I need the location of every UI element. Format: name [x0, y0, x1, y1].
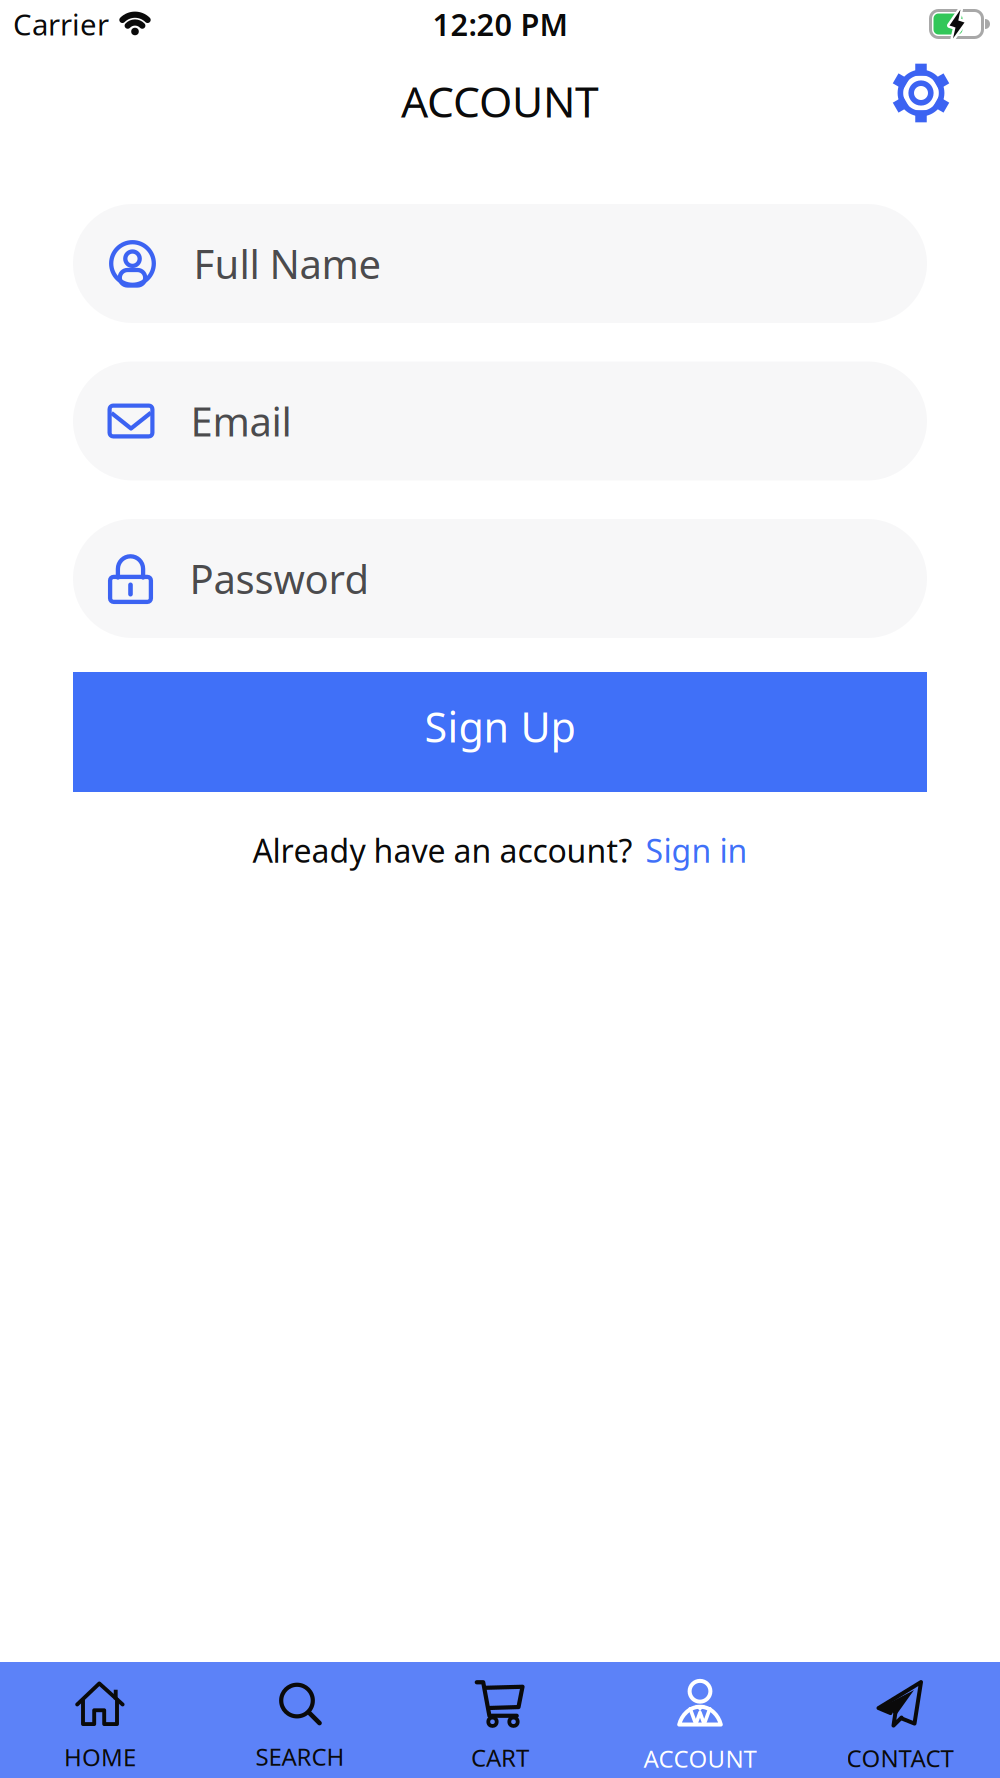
button[interactable]: CONTACT: [800, 1662, 1000, 1778]
button[interactable]: Sign Up: [73, 672, 927, 792]
staticText: CONTACT: [846, 1742, 953, 1774]
staticText: SEARCH: [255, 1741, 344, 1772]
staticText: ACCOUNT: [401, 73, 599, 129]
button[interactable]: Full Name: [73, 204, 927, 323]
button[interactable]: SEARCH: [200, 1662, 400, 1778]
staticText: CART: [471, 1742, 529, 1773]
button[interactable]: CART: [400, 1662, 600, 1778]
button[interactable]: ACCOUNT: [600, 1662, 800, 1778]
button[interactable]: Settings: [883, 55, 959, 131]
button[interactable]: HOME: [0, 1662, 200, 1778]
staticText: Full Name: [193, 237, 381, 290]
staticText: Already have an account?: [252, 829, 632, 871]
button[interactable]: Email: [73, 361, 927, 480]
staticText: Email: [190, 394, 291, 447]
staticText: HOME: [64, 1741, 136, 1773]
staticText: Password: [189, 552, 369, 605]
staticText: Carrier: [13, 4, 109, 43]
button[interactable]: Password: [73, 519, 927, 638]
staticText: 12:20 PM: [432, 4, 567, 44]
staticText: Sign Up: [424, 699, 575, 754]
button[interactable]: Sign in: [645, 829, 747, 871]
staticText: Sign in: [645, 829, 747, 871]
staticText: ACCOUNT: [643, 1743, 756, 1774]
